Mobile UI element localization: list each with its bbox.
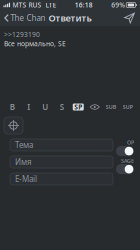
staticText: Ответить: [48, 12, 91, 24]
staticText: LTE: [41, 1, 56, 9]
staticText: S: [60, 102, 64, 112]
button[interactable]: SUB: [104, 100, 118, 113]
staticText: I: [27, 102, 30, 112]
staticText: SUP: [123, 103, 133, 111]
button[interactable]: E-Mail: [10, 173, 113, 185]
button[interactable]: Preview: [88, 100, 102, 113]
button[interactable]: Attach image: [4, 117, 23, 134]
staticText: U: [42, 102, 48, 112]
staticText: MTS RUS: [10, 1, 41, 9]
button[interactable]: I: [22, 100, 36, 113]
button[interactable]: The Chan: [1, 10, 48, 26]
staticText: The Chan: [10, 13, 45, 23]
staticText: [125, 1, 126, 9]
staticText: SP: [74, 103, 82, 111]
button[interactable]: B: [5, 100, 19, 113]
button[interactable]: [116, 146, 134, 156]
staticText: Тема: [15, 140, 33, 150]
staticText: Все нормально, SE: [4, 39, 66, 48]
button[interactable]: SUP: [121, 100, 135, 113]
staticText: >>1293190: [4, 30, 40, 39]
staticText: SUB: [106, 103, 117, 111]
button[interactable]: Тема: [10, 139, 113, 151]
staticText: OP: [127, 139, 134, 146]
staticText: B: [10, 102, 15, 112]
staticText: 16:18: [75, 1, 93, 9]
staticText: 69%: [111, 1, 125, 9]
button[interactable]: SP: [71, 100, 85, 113]
staticText: SAGE: [121, 157, 134, 164]
staticText: E-Mail: [15, 174, 37, 184]
button[interactable]: U: [38, 100, 52, 113]
button[interactable]: Имя: [10, 156, 113, 168]
button[interactable]: [116, 164, 134, 174]
staticText: Имя: [15, 157, 32, 167]
button[interactable]: Send: [120, 10, 139, 26]
button[interactable]: S: [55, 100, 69, 113]
